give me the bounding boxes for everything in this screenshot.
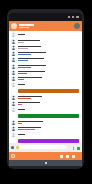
button[interactable] [9, 131, 82, 137]
button[interactable]: Send [76, 146, 80, 150]
button[interactable] [9, 69, 82, 75]
button[interactable]: Record [11, 154, 15, 158]
button[interactable] [9, 106, 82, 112]
button[interactable]: Action [71, 154, 75, 158]
button[interactable] [9, 44, 82, 50]
button[interactable] [9, 119, 82, 125]
other: Profile [11, 23, 17, 29]
button[interactable]: Menu [74, 23, 80, 29]
button[interactable] [18, 89, 79, 93]
button[interactable] [18, 139, 79, 143]
button[interactable] [9, 56, 82, 62]
button[interactable]: Action [59, 154, 63, 158]
button[interactable] [9, 50, 82, 56]
button[interactable] [9, 81, 82, 87]
button[interactable]: Emoji [16, 146, 19, 149]
button[interactable] [9, 125, 82, 131]
button[interactable] [18, 114, 79, 118]
button[interactable]: Action [65, 154, 69, 158]
button[interactable] [9, 100, 82, 106]
button[interactable]: Attach [71, 146, 75, 150]
button[interactable]: Profile [9, 21, 82, 31]
button[interactable] [9, 38, 82, 44]
button[interactable] [9, 94, 82, 100]
button[interactable] [9, 75, 82, 81]
button[interactable] [9, 63, 82, 69]
button[interactable] [9, 31, 82, 37]
